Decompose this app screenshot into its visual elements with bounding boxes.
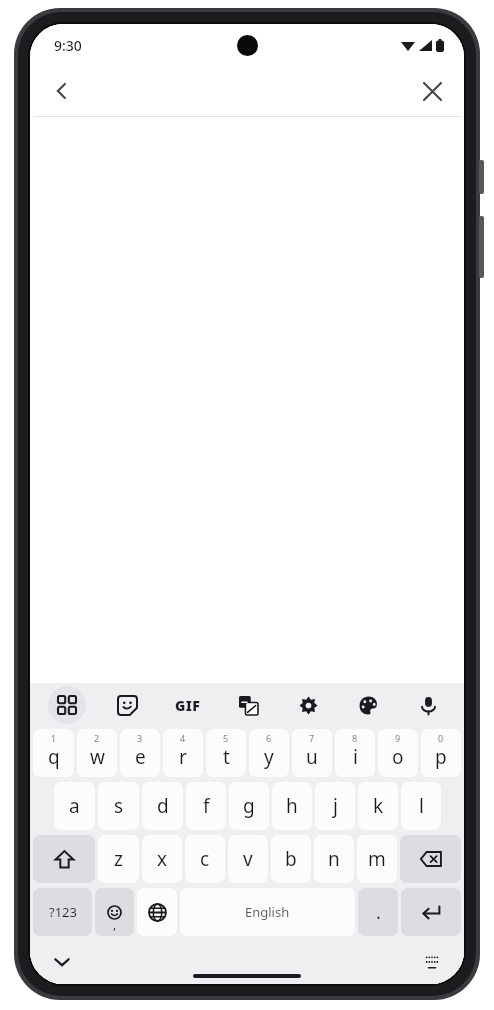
button[interactable]: Translate bbox=[218, 683, 278, 727]
button[interactable]: 5 bbox=[206, 729, 246, 777]
button[interactable]: 3 bbox=[120, 729, 160, 777]
staticText: g bbox=[243, 793, 255, 819]
button[interactable]: Themes bbox=[338, 683, 398, 727]
staticText: p bbox=[435, 744, 447, 770]
button[interactable]: 2 bbox=[77, 729, 117, 777]
button[interactable]: ?123 bbox=[33, 888, 92, 936]
button[interactable]: Apps bbox=[36, 683, 97, 727]
staticText: o bbox=[392, 744, 404, 770]
staticText: 2 bbox=[94, 732, 100, 744]
staticText: 9:30 bbox=[54, 36, 82, 55]
staticText: j bbox=[333, 793, 338, 819]
button[interactable]: d bbox=[142, 782, 183, 830]
staticText: l bbox=[419, 793, 424, 819]
staticText: d bbox=[157, 793, 169, 819]
staticText: GIF bbox=[175, 696, 201, 715]
button[interactable]: v bbox=[228, 835, 268, 883]
button[interactable]: 6 bbox=[249, 729, 289, 777]
button[interactable]: 0 bbox=[421, 729, 461, 777]
staticText: f bbox=[203, 793, 210, 819]
staticText: v bbox=[243, 846, 253, 872]
button[interactable]: Close bbox=[410, 69, 454, 113]
staticText: z bbox=[114, 846, 123, 872]
staticText: 3 bbox=[137, 732, 143, 744]
button[interactable]: English bbox=[180, 888, 355, 936]
button[interactable]: Emoji bbox=[95, 888, 134, 936]
staticText: q bbox=[48, 744, 60, 770]
button[interactable]: m bbox=[357, 835, 397, 883]
staticText: n bbox=[328, 846, 340, 872]
staticText: h bbox=[286, 793, 298, 819]
button[interactable]: Switch keyboard bbox=[412, 942, 452, 982]
button[interactable]: Back bbox=[40, 69, 84, 113]
button[interactable]: n bbox=[314, 835, 354, 883]
button[interactable]: z bbox=[98, 835, 139, 883]
staticText: 9 bbox=[395, 732, 401, 744]
staticText: 1 bbox=[51, 732, 57, 744]
button[interactable]: Voice input bbox=[398, 683, 458, 727]
button[interactable]: k bbox=[358, 782, 398, 830]
staticText: c bbox=[200, 846, 210, 872]
button[interactable]: 8 bbox=[335, 729, 375, 777]
button[interactable]: 9 bbox=[378, 729, 418, 777]
staticText: a bbox=[69, 793, 80, 819]
staticText: w bbox=[90, 744, 105, 770]
button[interactable]: s bbox=[98, 782, 139, 830]
staticText: y bbox=[264, 744, 274, 770]
button[interactable]: Hide keyboard bbox=[42, 942, 82, 982]
staticText: s bbox=[114, 793, 124, 819]
staticText: 5 bbox=[223, 732, 229, 744]
staticText: x bbox=[157, 846, 168, 872]
button[interactable]: 4 bbox=[163, 729, 203, 777]
staticText: 4 bbox=[180, 732, 186, 744]
staticText: 6 bbox=[266, 732, 272, 744]
staticText: i bbox=[353, 744, 358, 770]
button[interactable]: Shift bbox=[33, 835, 95, 883]
button[interactable]: l bbox=[401, 782, 441, 830]
button[interactable]: Settings bbox=[278, 683, 338, 727]
staticText: t bbox=[223, 744, 230, 770]
staticText: 8 bbox=[352, 732, 358, 744]
staticText: r bbox=[179, 744, 187, 770]
staticText: 7 bbox=[309, 732, 315, 744]
button[interactable]: Backspace bbox=[400, 835, 461, 883]
button[interactable]: . bbox=[358, 888, 398, 936]
button[interactable]: g bbox=[229, 782, 269, 830]
staticText: 0 bbox=[438, 732, 444, 744]
button[interactable]: Enter bbox=[401, 888, 461, 936]
button[interactable]: Change language bbox=[137, 888, 177, 936]
button[interactable]: x bbox=[142, 835, 182, 883]
staticText: English bbox=[245, 903, 290, 921]
button[interactable]: 1 bbox=[33, 729, 74, 777]
staticText: . bbox=[376, 900, 381, 925]
staticText: ?123 bbox=[49, 903, 77, 921]
staticText: , bbox=[113, 916, 117, 932]
button[interactable]: h bbox=[272, 782, 312, 830]
button[interactable]: b bbox=[271, 835, 311, 883]
button[interactable]: f bbox=[186, 782, 226, 830]
button[interactable]: j bbox=[315, 782, 355, 830]
button[interactable]: c bbox=[185, 835, 225, 883]
staticText: k bbox=[373, 793, 384, 819]
staticText: e bbox=[135, 744, 146, 770]
staticText: b bbox=[285, 846, 297, 872]
button[interactable]: Stickers bbox=[97, 683, 158, 727]
button[interactable]: a bbox=[54, 782, 95, 830]
button[interactable]: 7 bbox=[292, 729, 332, 777]
staticText: m bbox=[368, 846, 386, 872]
staticText: u bbox=[306, 744, 318, 770]
button[interactable]: GIF bbox=[158, 683, 218, 727]
